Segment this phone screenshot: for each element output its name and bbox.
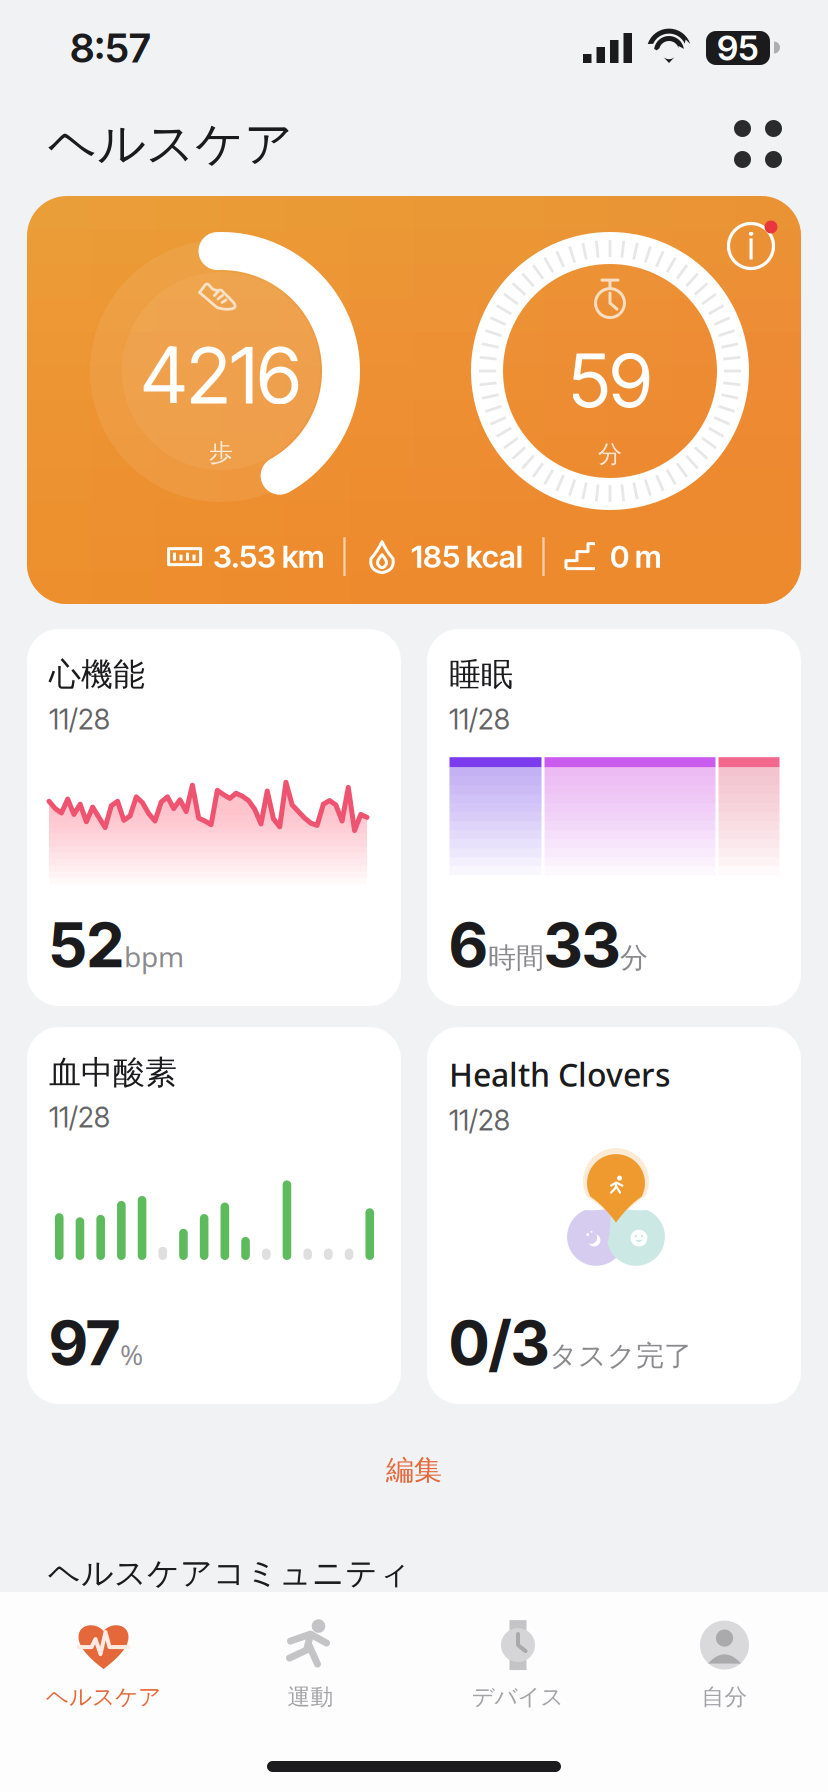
staticText: | <box>340 537 349 576</box>
staticText: 97 <box>49 1306 120 1380</box>
button[interactable]: 自分 <box>621 1608 828 1720</box>
button[interactable]: デバイス <box>414 1608 621 1720</box>
staticText: 運動 <box>287 1683 333 1711</box>
button[interactable]: 心機能 <box>27 629 401 1006</box>
staticText: 59 <box>568 335 651 425</box>
button[interactable]: 運動 <box>207 1608 414 1720</box>
staticText: ヘルスケア <box>46 1683 161 1711</box>
staticText: 編集 <box>386 1453 442 1487</box>
staticText: bpm <box>124 938 184 975</box>
staticText: 3.53 km <box>213 538 324 575</box>
staticText: 歩 <box>209 438 233 467</box>
staticText: 6 <box>449 908 488 982</box>
staticText: 185 kcal <box>411 538 523 575</box>
staticText: 分 <box>598 439 622 469</box>
button[interactable]: ヘルスケア <box>0 1608 207 1720</box>
button[interactable]: 睡眠 <box>427 629 801 1006</box>
staticText: ヘルスケアコミュニティ <box>48 1554 411 1593</box>
staticText: 11/28 <box>49 702 110 736</box>
button[interactable]: More options <box>716 102 800 186</box>
staticText: 自分 <box>701 1683 747 1711</box>
staticText: | <box>539 537 548 576</box>
staticText: 8:57 <box>70 24 151 72</box>
staticText: 33 <box>544 908 620 982</box>
staticText: 分 <box>620 941 648 975</box>
staticText: 0 m <box>610 538 661 575</box>
staticText: 11/28 <box>449 702 510 736</box>
staticText: Health Clovers <box>449 1053 671 1095</box>
staticText: 52 <box>49 908 124 982</box>
staticText: 心機能 <box>49 655 145 694</box>
staticText: 95 <box>717 27 759 69</box>
staticText: 血中酸素 <box>49 1053 177 1092</box>
staticText: 睡眠 <box>449 655 513 694</box>
staticText: 4216 <box>141 328 301 422</box>
button[interactable]: Health Clovers <box>427 1027 801 1404</box>
staticText: i <box>747 223 754 269</box>
staticText: 0/3 <box>449 1306 549 1380</box>
button[interactable]: 血中酸素 <box>27 1027 401 1404</box>
staticText: % <box>120 1336 143 1373</box>
staticText: デバイス <box>471 1683 563 1711</box>
button[interactable]: 編集 <box>326 1431 502 1509</box>
staticText: 11/28 <box>449 1103 510 1137</box>
staticText: ヘルスケア <box>48 114 293 173</box>
staticText: タスク完了 <box>549 1339 692 1373</box>
button[interactable]: Information <box>723 218 779 274</box>
staticText: 11/28 <box>49 1100 110 1134</box>
staticText: 時間 <box>488 941 544 975</box>
